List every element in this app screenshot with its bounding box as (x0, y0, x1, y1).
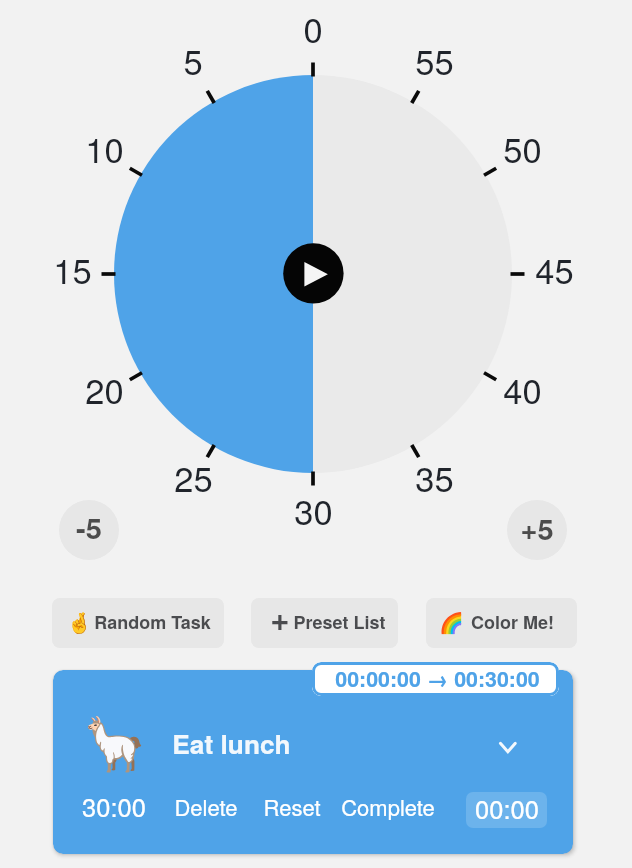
button[interactable]: 🦙 (53, 670, 573, 854)
staticText: +5 (520, 507, 554, 549)
staticText: Delete (174, 791, 238, 823)
staticText: 15 (53, 244, 92, 293)
button[interactable]: 00:00:00 → 00:30:00 (312, 662, 559, 696)
staticText: -5 (76, 506, 102, 548)
staticText: 🤞 (67, 611, 92, 634)
button[interactable]: Start timer (283, 244, 343, 304)
staticText: 0 (303, 3, 323, 52)
staticText: 00:00 (475, 792, 539, 826)
staticText: + (270, 598, 290, 641)
staticText: 10 (85, 123, 124, 172)
staticText: 30:00 (82, 788, 146, 825)
button[interactable]: Expand task (484, 723, 532, 771)
button[interactable]: 00:00 (466, 792, 547, 828)
staticText: 🦙 (82, 714, 147, 775)
button[interactable]: 🤞 (52, 598, 224, 648)
staticText: 40 (503, 364, 542, 413)
staticText: Reset (263, 791, 321, 823)
staticText: 55 (415, 35, 454, 84)
button[interactable]: Reset (259, 785, 327, 819)
staticText: 🌈 (439, 611, 464, 634)
staticText: Random Task (94, 609, 211, 635)
button[interactable]: + (251, 598, 398, 648)
staticText: 5 (183, 35, 203, 84)
staticText: Eat lunch (172, 724, 291, 762)
button[interactable]: +5 (507, 500, 567, 560)
staticText: 50 (503, 123, 542, 172)
button[interactable]: -5 (59, 500, 119, 560)
staticText: Color Me! (471, 609, 554, 635)
button[interactable]: 🌈 (426, 598, 577, 648)
staticText: 30 (294, 485, 333, 534)
staticText: Preset List (293, 609, 386, 635)
staticText: 25 (174, 452, 213, 501)
staticText: Complete (341, 791, 435, 823)
staticText: 20 (85, 364, 124, 413)
staticText: 35 (415, 452, 454, 501)
staticText: 00:00:00 → 00:30:00 (335, 663, 540, 694)
button[interactable]: Complete (338, 785, 438, 819)
button[interactable]: Delete (170, 785, 244, 819)
staticText: 45 (535, 244, 574, 293)
